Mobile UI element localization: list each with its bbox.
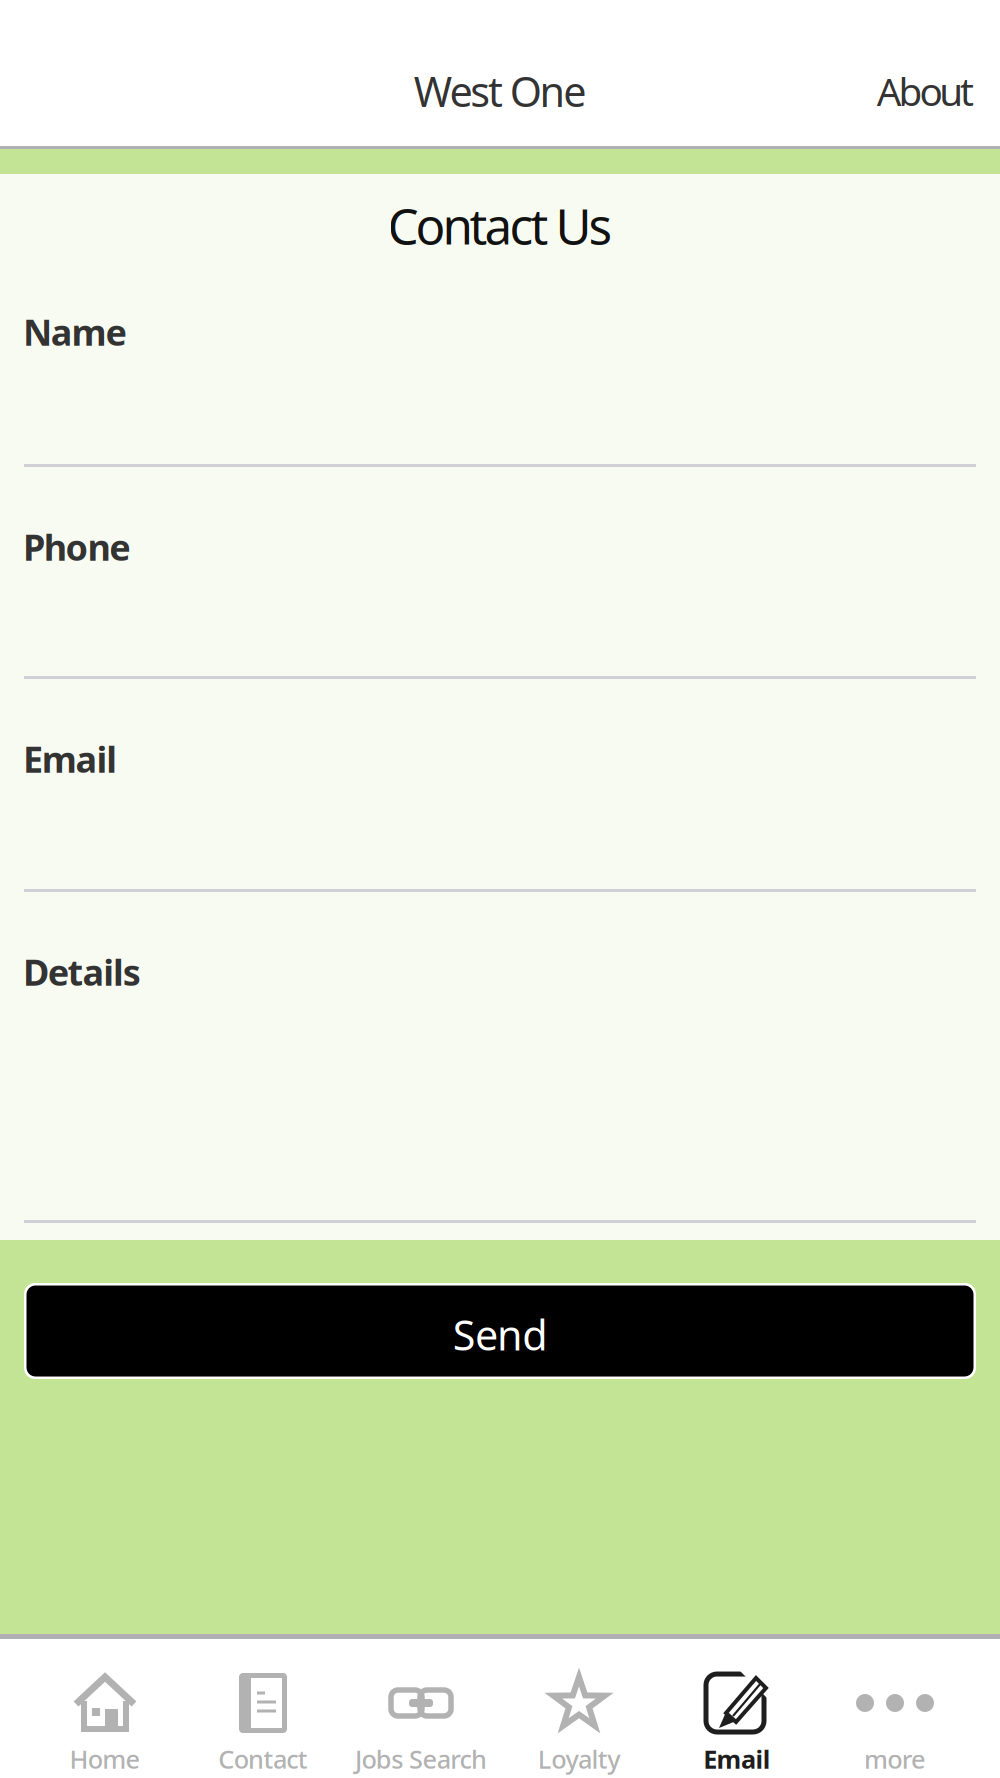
staticText: more — [864, 1742, 926, 1776]
button[interactable]: more — [816, 1639, 974, 1778]
staticText: West One — [414, 64, 586, 118]
button[interactable]: Loyalty — [500, 1639, 658, 1778]
button[interactable]: Contact — [184, 1639, 342, 1778]
staticText: Email — [703, 1742, 771, 1776]
staticText: Name — [23, 308, 126, 356]
staticText: Phone — [23, 523, 130, 571]
button[interactable]: Email — [658, 1639, 816, 1778]
button[interactable]: Phone — [0, 467, 1000, 679]
staticText: Contact — [218, 1742, 308, 1776]
staticText: Email — [23, 735, 117, 783]
button[interactable]: Jobs Search — [342, 1639, 500, 1778]
button[interactable]: About — [857, 55, 1000, 127]
button[interactable]: Email — [0, 679, 1000, 892]
staticText: Jobs Search — [355, 1742, 487, 1776]
button[interactable]: Home — [26, 1639, 184, 1778]
button[interactable]: Send — [24, 1283, 976, 1379]
staticText: Send — [453, 1307, 547, 1362]
button[interactable]: Name — [0, 268, 1000, 467]
button[interactable]: Details — [0, 892, 1000, 1223]
staticText: Home — [69, 1742, 141, 1776]
staticText: About — [877, 65, 974, 117]
staticText: Contact Us — [387, 192, 612, 258]
staticText: Loyalty — [538, 1742, 620, 1776]
staticText: Details — [23, 948, 141, 996]
